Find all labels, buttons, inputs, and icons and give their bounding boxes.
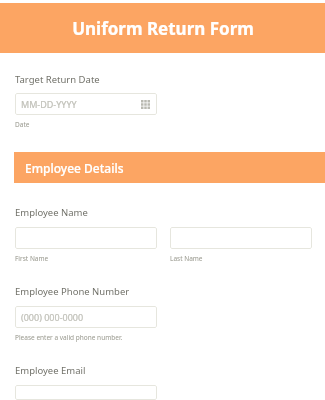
staticText: Employee Email xyxy=(15,364,86,377)
button[interactable] xyxy=(15,227,157,249)
button[interactable] xyxy=(170,227,312,249)
staticText: Target Return Date xyxy=(15,73,100,86)
staticText: Last Name xyxy=(170,254,203,263)
staticText: (000) 000-0000 xyxy=(21,311,84,323)
staticText: Date xyxy=(15,120,30,129)
button[interactable]: (000) 000-0000 xyxy=(15,306,157,328)
staticText: Employee Phone Number xyxy=(15,285,130,298)
staticText: Employee Name xyxy=(15,206,88,219)
button[interactable] xyxy=(15,385,157,400)
staticText: Please enter a valid phone number. xyxy=(15,333,123,342)
staticText: MM-DD-YYYY xyxy=(21,98,77,110)
button[interactable]: MM-DD-YYYY xyxy=(15,93,157,115)
staticText: First Name xyxy=(15,254,49,263)
staticText: Employee Details xyxy=(25,160,124,176)
staticText: Uniform Return Form xyxy=(72,17,254,40)
button[interactable]: Open calendar picker xyxy=(140,99,151,110)
